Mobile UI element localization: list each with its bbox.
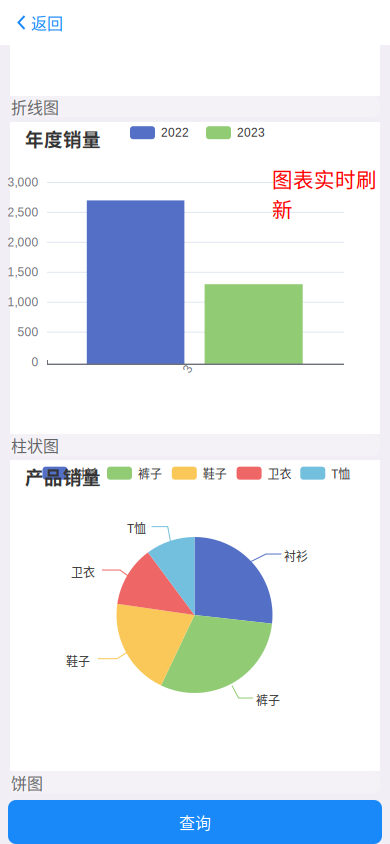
staticText: 查询 (179, 810, 211, 834)
button[interactable]: 查询 (8, 800, 382, 844)
staticText: 卫衣 (71, 563, 95, 580)
staticText: 衬衫 (284, 547, 308, 564)
staticText: 1,000 (7, 295, 38, 309)
staticText: 3,000 (7, 176, 38, 189)
staticText: 饼图 (11, 771, 43, 794)
staticText: 柱状图 (11, 433, 59, 457)
staticText: 鞋子 (203, 464, 227, 482)
button[interactable]: 返回 (0, 0, 120, 45)
staticText: 年度销量 (25, 125, 101, 152)
staticText: 衬衫 (73, 464, 97, 482)
staticText: 裤子 (138, 464, 162, 482)
staticText: 2022 (161, 126, 189, 139)
staticText: 2023 (237, 126, 265, 139)
staticText: 3 (184, 362, 191, 376)
staticText: 500 (17, 325, 38, 339)
staticText: 裤子 (256, 691, 280, 708)
staticText: 2,000 (7, 236, 38, 249)
staticText: T恤 (127, 519, 146, 536)
staticText: 折线图 (11, 95, 59, 118)
staticText: 1,500 (7, 265, 38, 279)
staticText: 卫衣 (268, 464, 292, 482)
staticText: 返回 (31, 11, 63, 34)
staticText: 0 (31, 355, 38, 369)
staticText: 产品销量 (25, 463, 101, 490)
staticText: 图表实时刷新 (272, 164, 377, 223)
staticText: 2,500 (7, 206, 38, 219)
staticText: T恤 (331, 464, 350, 482)
staticText: 鞋子 (66, 652, 90, 669)
